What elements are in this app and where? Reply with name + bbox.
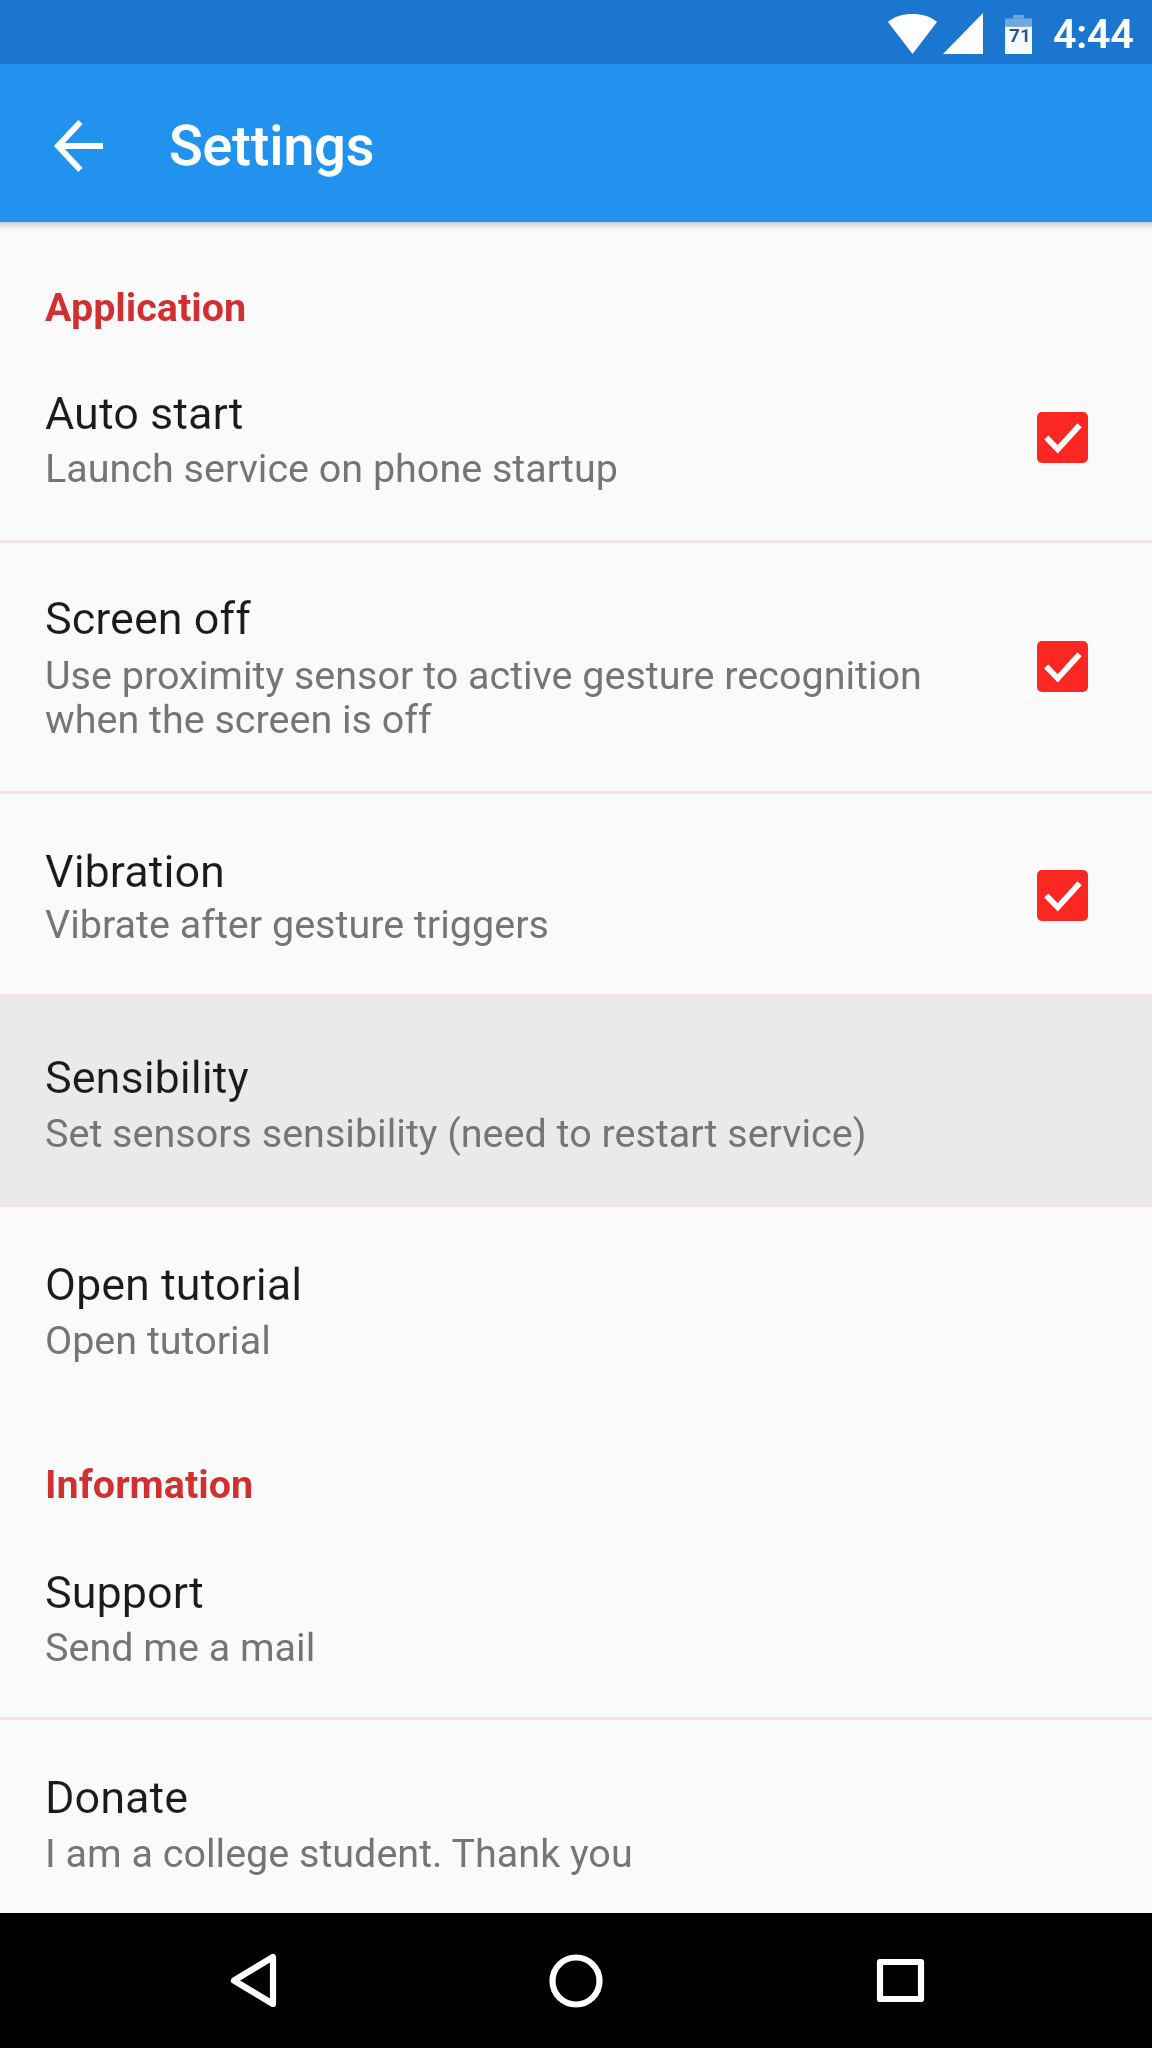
button[interactable]: Toggle Auto start bbox=[1037, 412, 1088, 463]
button[interactable]: Vibration bbox=[0, 793, 1152, 995]
staticText: Sensibility bbox=[45, 1051, 249, 1104]
staticText: Donate bbox=[45, 1771, 189, 1824]
button[interactable]: Back bbox=[181, 1913, 325, 2048]
button[interactable]: Auto start bbox=[0, 356, 1152, 540]
staticText: Settings bbox=[169, 114, 375, 179]
button[interactable]: Donate bbox=[0, 1719, 1152, 1913]
staticText: when the screen is off bbox=[45, 696, 432, 742]
staticText: Information bbox=[45, 1461, 254, 1507]
staticText: Vibration bbox=[45, 845, 225, 898]
staticText: I am a college student. Thank you bbox=[45, 1830, 633, 1876]
button[interactable]: Recent apps bbox=[828, 1913, 972, 2048]
staticText: Auto start bbox=[45, 387, 244, 440]
staticText: Send me a mail bbox=[45, 1624, 316, 1670]
staticText: Set sensors sensibility (need to restart… bbox=[45, 1110, 867, 1156]
button[interactable]: Support bbox=[0, 1530, 1152, 1717]
staticText: Launch service on phone startup bbox=[45, 445, 618, 491]
button[interactable]: Toggle Vibration bbox=[1037, 870, 1088, 921]
button[interactable]: Open tutorial bbox=[0, 1206, 1152, 1400]
staticText: Screen off bbox=[45, 592, 251, 645]
staticText: Support bbox=[45, 1566, 204, 1619]
staticText: Open tutorial bbox=[45, 1317, 271, 1363]
staticText: Vibrate after gesture triggers bbox=[45, 901, 549, 947]
button[interactable]: Home bbox=[504, 1913, 648, 2048]
button[interactable]: Navigate back bbox=[28, 95, 130, 197]
staticText: Application bbox=[45, 284, 247, 330]
staticText: Open tutorial bbox=[45, 1258, 303, 1311]
staticText: 71 bbox=[1009, 24, 1031, 46]
button[interactable]: Toggle Screen off bbox=[1037, 641, 1088, 692]
staticText: Use proximity sensor to active gesture r… bbox=[45, 652, 922, 698]
button[interactable]: Screen off bbox=[0, 542, 1152, 791]
staticText: 4:44 bbox=[1053, 10, 1134, 58]
button[interactable]: Sensibility bbox=[0, 997, 1152, 1204]
